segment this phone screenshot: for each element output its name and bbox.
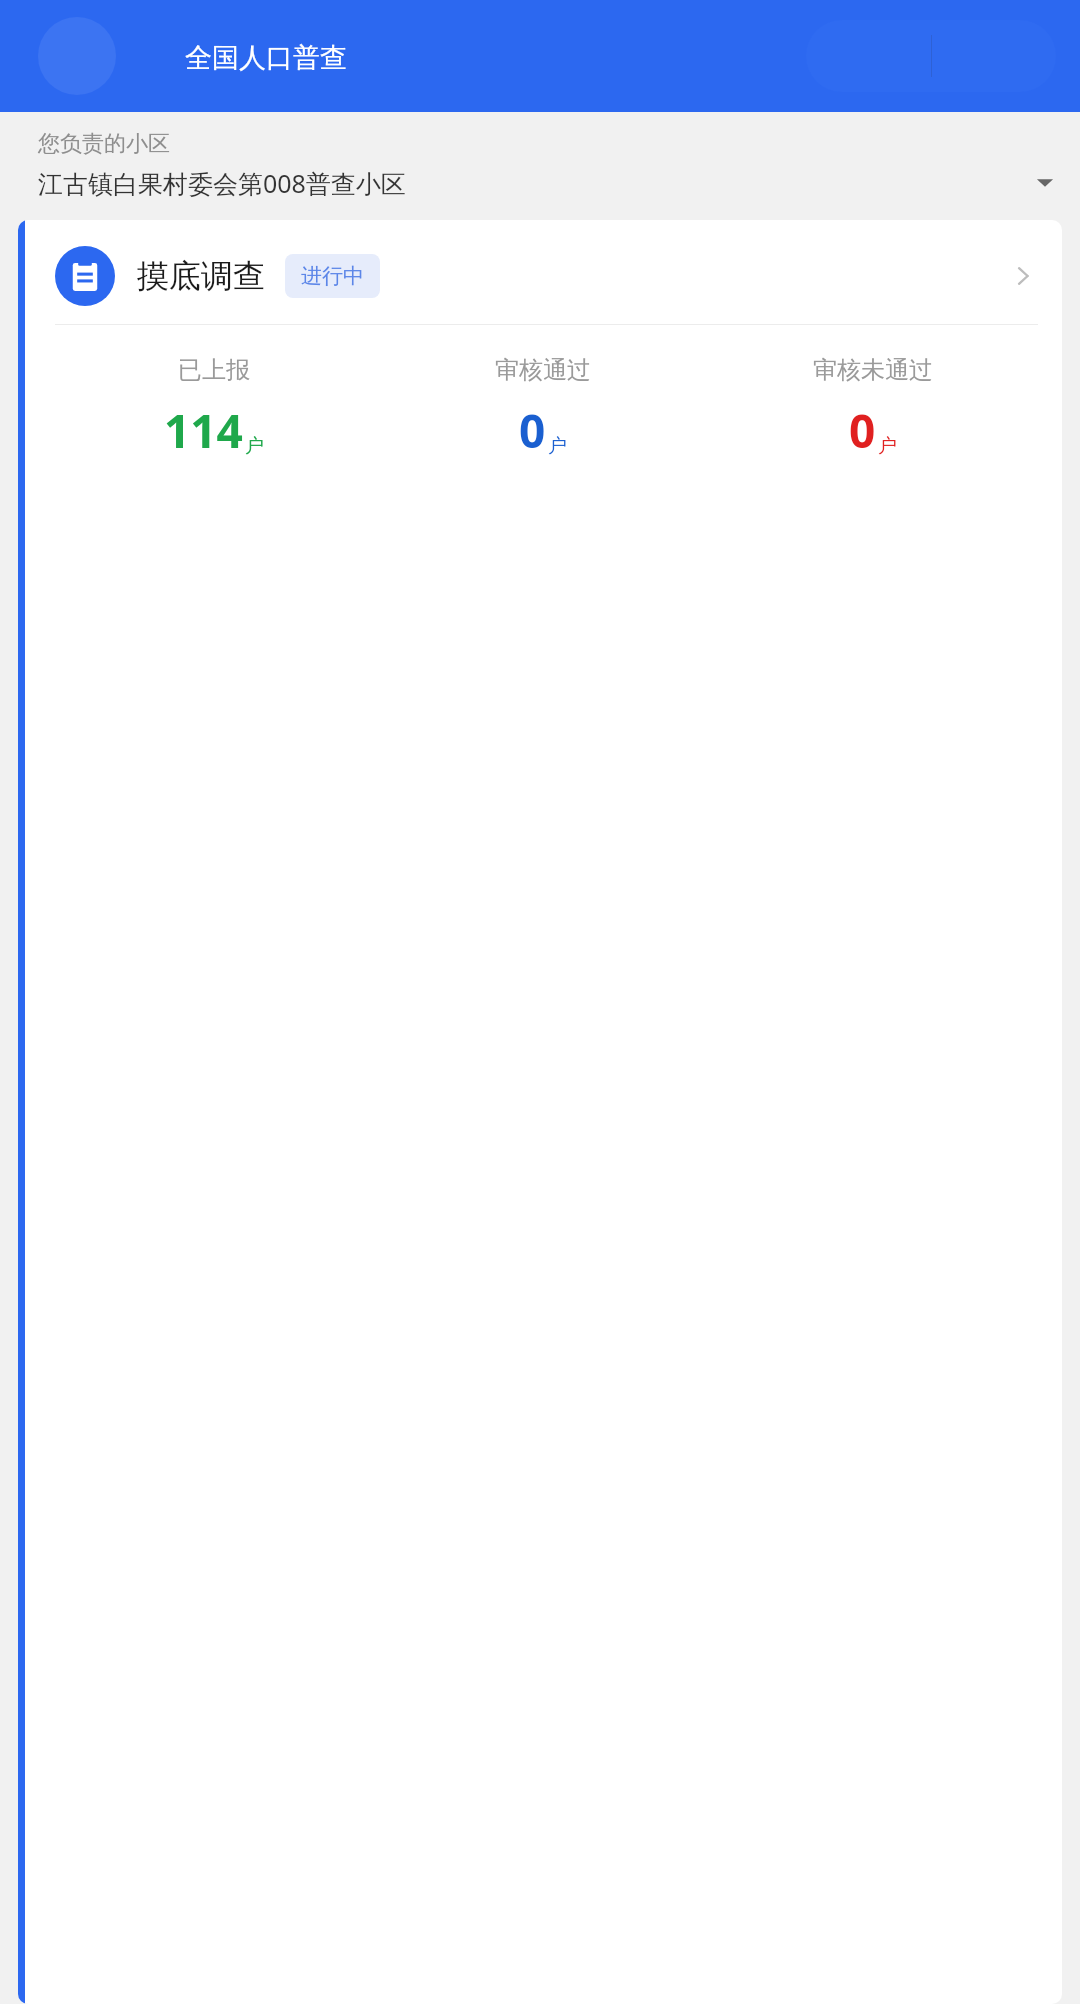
staticText: 江古镇白果村委会第008普查小区	[38, 166, 1032, 200]
button[interactable]: 摸底调查	[18, 220, 1062, 2004]
staticText: 审核未通过	[813, 355, 933, 385]
staticText: 114	[164, 399, 243, 462]
staticText: 0	[849, 399, 876, 462]
button[interactable]: 您负责的小区	[0, 122, 1080, 204]
staticText: 户	[245, 434, 264, 458]
staticText: 全国人口普查	[185, 41, 347, 75]
other: Open	[1012, 263, 1038, 289]
staticText: 摸底调查	[137, 256, 265, 296]
staticText: 您负责的小区	[38, 130, 170, 158]
button[interactable]: Profile	[38, 17, 116, 95]
staticText: 已上报	[178, 355, 250, 385]
staticText: 0	[519, 399, 546, 462]
staticText: 户	[878, 434, 897, 458]
staticText: 进行中	[301, 263, 364, 289]
staticText: 审核通过	[495, 355, 591, 385]
staticText: 户	[548, 434, 567, 458]
other: Expand	[1032, 170, 1058, 196]
